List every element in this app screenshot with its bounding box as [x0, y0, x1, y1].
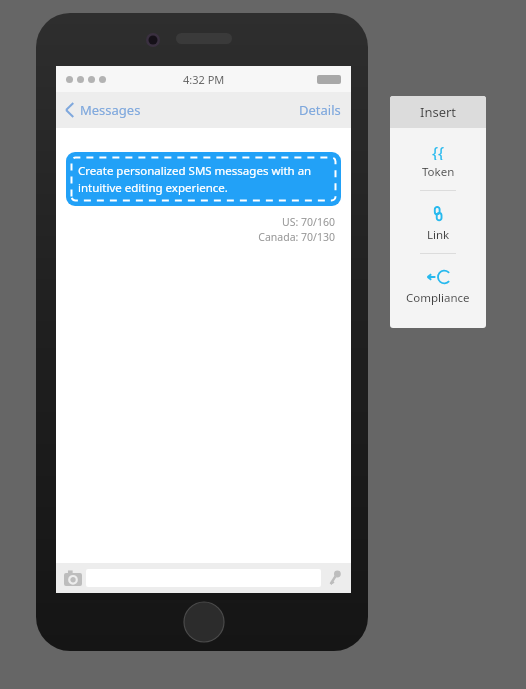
- button[interactable]: Link: [390, 191, 486, 253]
- staticText: 4:32 PM: [183, 72, 225, 87]
- staticText: Details: [299, 101, 341, 119]
- button[interactable]: Messages: [56, 97, 149, 123]
- button[interactable]: Create personalized SMS messages with an…: [66, 152, 341, 206]
- button[interactable]: Record audio: [325, 568, 345, 588]
- button[interactable]: {{: [390, 128, 486, 190]
- button[interactable]: Camera: [62, 567, 84, 589]
- staticText: US: 70/160: [282, 215, 335, 229]
- staticText: Link: [427, 227, 450, 243]
- button[interactable]: Compliance: [390, 254, 486, 316]
- staticText: Compliance: [406, 290, 470, 306]
- staticText: Canada: 70/130: [258, 230, 335, 244]
- staticText: Token: [422, 164, 455, 180]
- button[interactable]: Details: [289, 95, 351, 125]
- staticText: Messages: [80, 101, 141, 119]
- staticText: Insert: [420, 103, 457, 121]
- staticText: Create personalized SMS messages with an…: [78, 163, 329, 195]
- staticText: {{: [432, 142, 445, 160]
